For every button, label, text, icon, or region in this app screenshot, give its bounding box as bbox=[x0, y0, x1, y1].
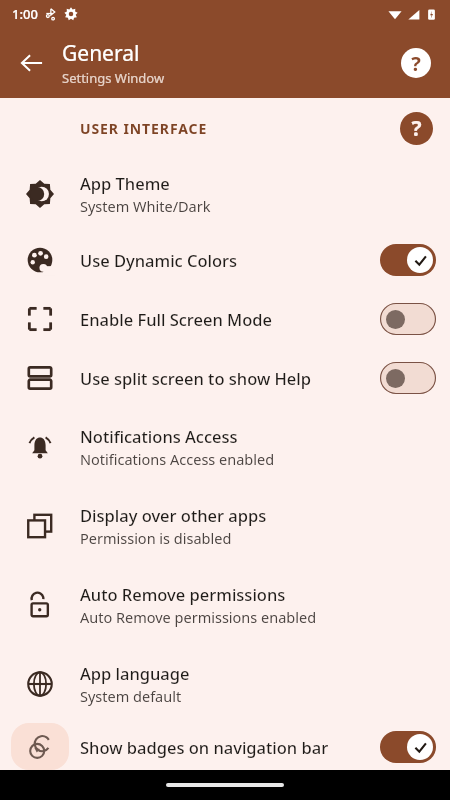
staticText: Settings Window bbox=[62, 69, 165, 87]
staticText: Notifications Access enabled bbox=[80, 449, 275, 469]
button[interactable]: Use Dynamic Colors bbox=[0, 230, 450, 289]
staticText: App Theme bbox=[80, 172, 170, 194]
button[interactable]: Display over other apps bbox=[0, 486, 450, 565]
button[interactable]: Section help bbox=[396, 108, 436, 148]
staticText: Auto Remove permissions enabled bbox=[80, 607, 317, 627]
button[interactable]: App language bbox=[0, 644, 450, 723]
staticText: 1:00 bbox=[12, 5, 38, 23]
staticText: Show badges on navigation bar bbox=[80, 736, 329, 758]
button[interactable]: Show badges on navigation bar bbox=[0, 723, 450, 770]
button[interactable]: Enable Full Screen Mode bbox=[0, 289, 450, 348]
button[interactable]: Notifications Access bbox=[0, 407, 450, 486]
staticText: Auto Remove permissions bbox=[80, 583, 286, 605]
button[interactable]: Help bbox=[394, 41, 438, 85]
staticText: ? bbox=[411, 114, 422, 143]
button[interactable]: App Theme bbox=[0, 158, 450, 230]
button[interactable]: Back bbox=[8, 39, 56, 87]
staticText: General bbox=[62, 39, 140, 68]
staticText: App language bbox=[80, 662, 190, 684]
staticText: Use split screen to show Help bbox=[80, 367, 311, 389]
staticText: ? bbox=[411, 50, 421, 77]
staticText: Enable Full Screen Mode bbox=[80, 308, 273, 330]
button[interactable]: Toggle on bbox=[380, 731, 436, 763]
staticText: Display over other apps bbox=[80, 504, 267, 526]
button[interactable]: Use split screen to show Help bbox=[0, 348, 450, 407]
button[interactable]: Toggle off bbox=[380, 362, 436, 394]
staticText: Notifications Access bbox=[80, 425, 238, 447]
staticText: Use Dynamic Colors bbox=[80, 249, 238, 271]
button[interactable]: Toggle off bbox=[380, 303, 436, 335]
staticText: USER INTERFACE bbox=[80, 119, 208, 138]
staticText: System White/Dark bbox=[80, 196, 211, 216]
button[interactable]: Toggle on bbox=[380, 244, 436, 276]
staticText: System default bbox=[80, 686, 182, 706]
button[interactable]: Auto Remove permissions bbox=[0, 565, 450, 644]
staticText: Permission is disabled bbox=[80, 528, 232, 548]
